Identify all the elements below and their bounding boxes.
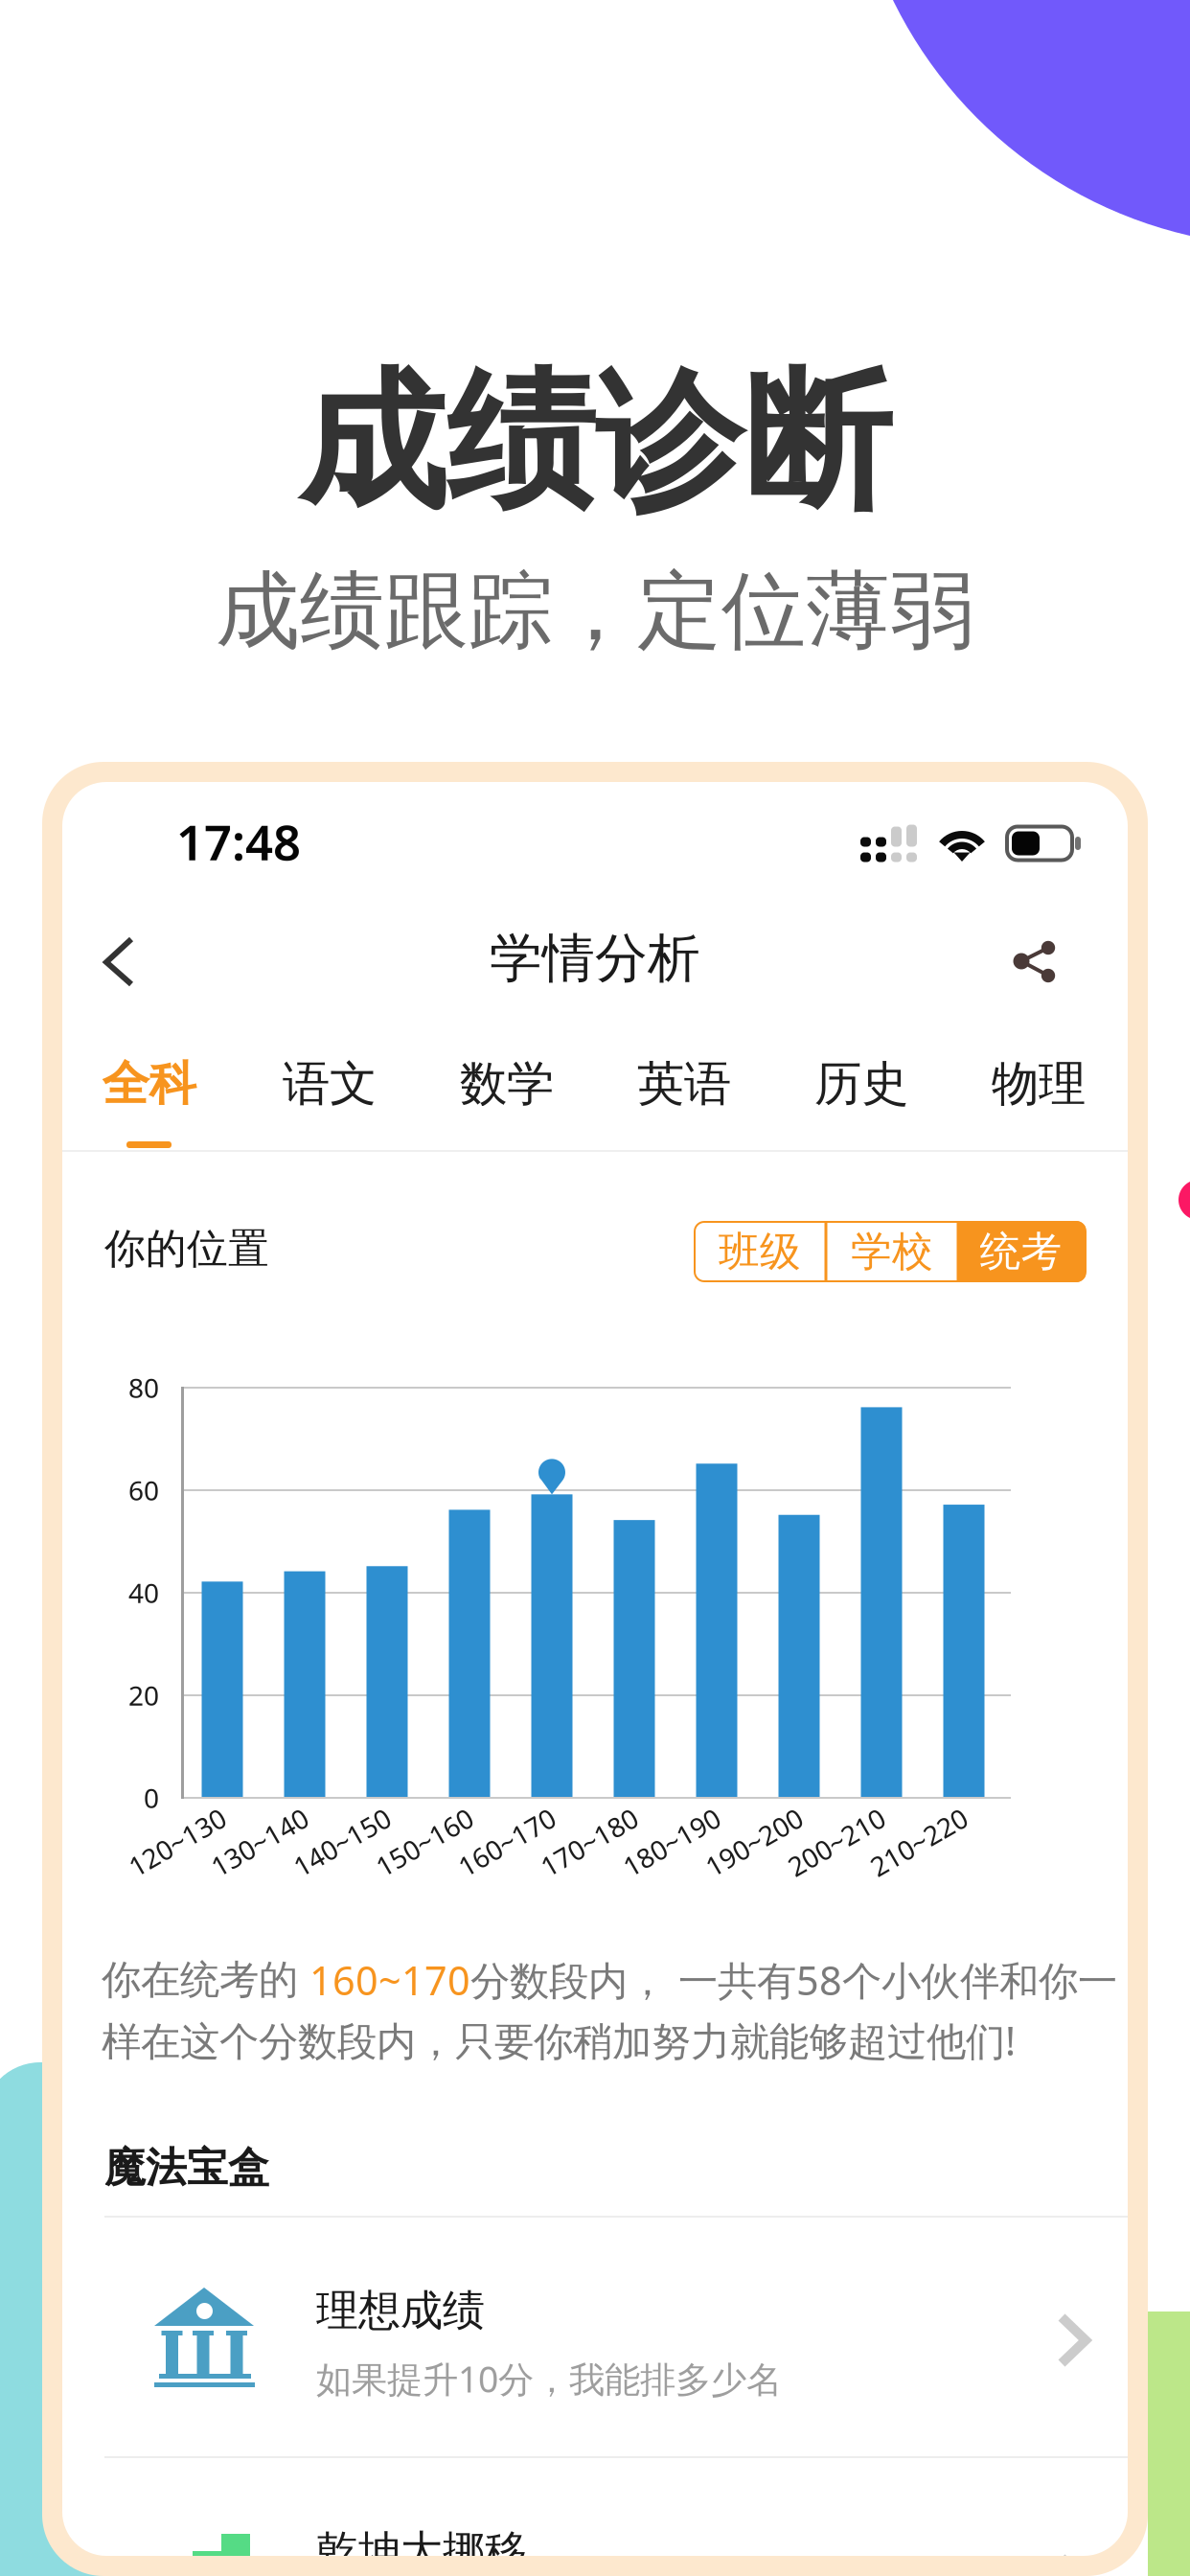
staticText: 130~140 bbox=[206, 1824, 313, 1860]
staticText: 统考 bbox=[980, 1226, 1062, 1277]
button[interactable]: 理想成绩 bbox=[62, 2218, 1128, 2456]
staticText: 160~170 bbox=[309, 1954, 470, 2006]
staticText: 60 bbox=[128, 1472, 159, 1508]
staticText: 成绩跟踪，定位薄弱 bbox=[216, 560, 974, 663]
staticText: 180~190 bbox=[618, 1824, 725, 1860]
staticText: 魔法宝盒 bbox=[104, 2143, 269, 2193]
button[interactable]: 英语 bbox=[598, 1031, 770, 1150]
staticText: 英语 bbox=[637, 1055, 731, 1113]
staticText: 210~220 bbox=[865, 1824, 973, 1860]
staticText: 物理 bbox=[992, 1055, 1086, 1113]
staticText: 学校 bbox=[851, 1226, 933, 1277]
staticText: 120~130 bbox=[124, 1824, 231, 1860]
staticText: 160~170 bbox=[453, 1824, 561, 1860]
staticText: 17:48 bbox=[176, 809, 301, 874]
staticText: 如果提升10分，我能排多少名 bbox=[316, 2355, 782, 2402]
button[interactable]: 数学 bbox=[421, 1031, 593, 1150]
staticText: 成绩诊断 bbox=[298, 352, 892, 534]
button[interactable]: 乾坤大挪移 bbox=[62, 2458, 1128, 2576]
staticText: 20 bbox=[128, 1677, 159, 1713]
staticText: 150~160 bbox=[371, 1824, 478, 1860]
button[interactable]: 全科 bbox=[63, 1031, 235, 1150]
staticText: 分数段内， 一共有58个小伙伴和你一 bbox=[470, 1954, 1117, 2006]
staticText: 历史 bbox=[814, 1055, 908, 1113]
staticText: 乾坤大挪移 bbox=[316, 2525, 527, 2576]
staticText: 全科 bbox=[102, 1055, 196, 1113]
staticText: 140~150 bbox=[288, 1824, 396, 1860]
staticText: 班级 bbox=[719, 1226, 801, 1277]
staticText: 语文 bbox=[283, 1055, 377, 1113]
staticText: 你在统考的 bbox=[102, 1956, 309, 2004]
staticText: 0 bbox=[144, 1780, 159, 1816]
button[interactable]: 分享 bbox=[1003, 924, 1095, 1012]
staticText: 理想成绩 bbox=[316, 2285, 485, 2336]
button[interactable]: 班级 bbox=[695, 1221, 824, 1282]
staticText: 200~210 bbox=[783, 1824, 890, 1860]
staticText: 190~200 bbox=[700, 1824, 808, 1860]
button[interactable]: 语文 bbox=[243, 1031, 416, 1150]
staticText: 样在这个分数段内，只要你稍加努力就能够超过他们! bbox=[102, 2014, 1016, 2067]
staticText: 80 bbox=[128, 1370, 159, 1405]
button[interactable]: 物理 bbox=[952, 1031, 1125, 1150]
button[interactable]: 学校 bbox=[827, 1221, 957, 1282]
staticText: 数学 bbox=[460, 1055, 554, 1113]
button[interactable]: 历史 bbox=[775, 1031, 948, 1150]
staticText: 40 bbox=[128, 1575, 159, 1611]
button[interactable]: 统考 bbox=[957, 1221, 1085, 1282]
staticText: 你的位置 bbox=[104, 1224, 269, 1274]
button[interactable]: 返回 bbox=[95, 924, 187, 1012]
staticText: 170~180 bbox=[536, 1824, 643, 1860]
staticText: 学情分析 bbox=[490, 926, 700, 990]
